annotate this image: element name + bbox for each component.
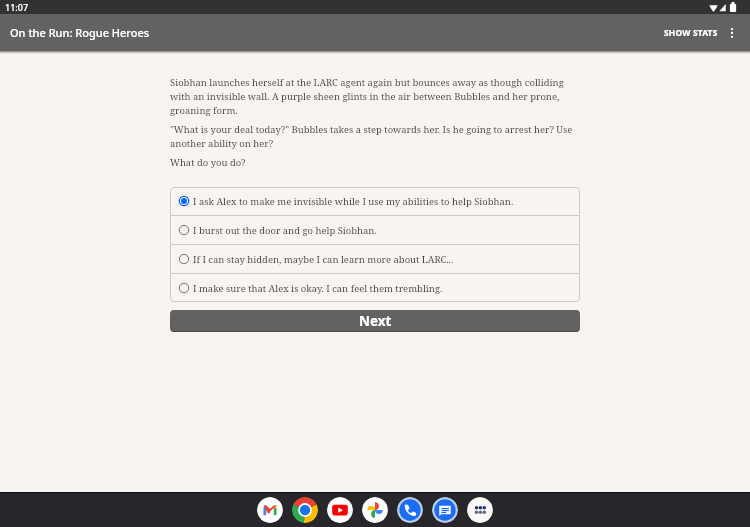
button[interactable]: I ask Alex to make me invisible while I … — [170, 187, 580, 215]
button[interactable]: More options — [721, 18, 743, 48]
button[interactable]: Messages — [432, 497, 458, 523]
button[interactable]: Next — [170, 310, 580, 332]
button[interactable]: Photos — [362, 497, 388, 523]
staticText: I ask Alex to make me invisible while I … — [193, 195, 514, 208]
staticText: I burst out the door and go help Siobhan… — [193, 224, 377, 237]
staticText: 11:07 — [5, 1, 29, 13]
button[interactable]: YouTube — [327, 497, 353, 523]
staticText: Next — [359, 312, 392, 330]
button[interactable]: SHOW STATS — [656, 17, 721, 48]
button[interactable]: All apps — [467, 497, 493, 523]
button[interactable]: I burst out the door and go help Siobhan… — [170, 216, 580, 244]
staticText: SHOW STATS — [664, 27, 718, 38]
staticText: What do you do? — [170, 156, 246, 169]
staticText: On the Run: Rogue Heroes — [10, 25, 150, 40]
staticText: If I can stay hidden, maybe I can learn … — [193, 253, 454, 266]
staticText: Siobhan launches herself at the LARC age… — [170, 76, 580, 117]
staticText: I make sure that Alex is okay. I can fee… — [193, 282, 443, 295]
staticText: "What is your deal today?" Bubbles takes… — [170, 123, 580, 150]
button[interactable]: I make sure that Alex is okay. I can fee… — [170, 274, 580, 302]
button[interactable]: Gmail — [257, 497, 283, 523]
button[interactable]: If I can stay hidden, maybe I can learn … — [170, 245, 580, 273]
button[interactable]: Chrome — [292, 497, 318, 523]
button[interactable]: Phone — [397, 497, 423, 523]
